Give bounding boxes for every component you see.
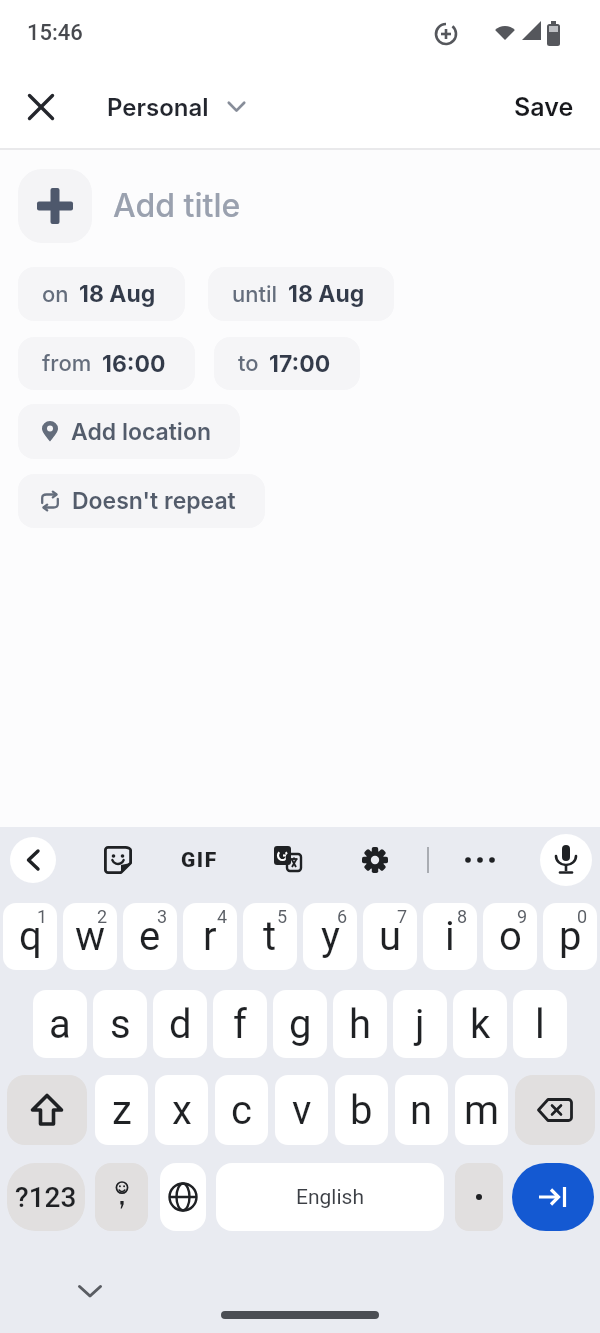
button[interactable]	[455, 1163, 503, 1231]
button[interactable]: Doesn't repeat	[18, 474, 265, 528]
staticText: l	[535, 1001, 545, 1048]
button[interactable]	[465, 857, 495, 863]
staticText: 1	[37, 906, 48, 927]
staticText: a	[49, 1001, 71, 1048]
button[interactable]: g	[273, 990, 327, 1058]
staticText: d	[169, 1001, 192, 1048]
button[interactable]: p	[543, 903, 597, 970]
button[interactable]	[540, 834, 592, 886]
staticText: 16:00	[102, 350, 166, 378]
button[interactable]	[29, 95, 53, 119]
staticText: g	[289, 1001, 312, 1048]
staticText: English	[296, 1185, 364, 1210]
staticText: w	[75, 913, 106, 960]
staticText: 6	[337, 906, 348, 927]
button[interactable]: English	[216, 1163, 444, 1231]
staticText: 18 Aug	[79, 280, 156, 308]
button[interactable]: to	[214, 337, 360, 390]
button[interactable]: m	[455, 1075, 508, 1145]
staticText: v	[292, 1087, 312, 1134]
button[interactable]: i	[423, 903, 477, 970]
staticText: until	[232, 281, 278, 308]
staticText: ?123	[15, 1181, 77, 1214]
staticText: c	[231, 1087, 252, 1134]
staticText: j	[415, 1001, 425, 1048]
staticText: p	[559, 913, 582, 960]
button[interactable]: a	[33, 990, 87, 1058]
staticText: 9	[517, 906, 528, 927]
staticText: on	[42, 281, 69, 308]
button[interactable]: y	[303, 903, 357, 970]
button[interactable]: ?123	[7, 1163, 85, 1231]
button[interactable]: u	[363, 903, 417, 970]
staticText: Doesn't repeat	[72, 487, 236, 515]
staticText: y	[321, 913, 340, 960]
button[interactable]	[104, 846, 132, 874]
staticText: t	[263, 913, 277, 960]
button[interactable]: Add title	[113, 186, 241, 225]
staticText: i	[445, 913, 455, 960]
staticText: GIF	[181, 848, 218, 873]
staticText: f	[233, 1001, 247, 1048]
button[interactable]: c	[215, 1075, 268, 1145]
button[interactable]: h	[333, 990, 387, 1058]
button[interactable]: x	[155, 1075, 208, 1145]
button[interactable]: l	[513, 990, 567, 1058]
staticText: Save	[514, 92, 574, 122]
staticText: 15:46	[27, 20, 83, 46]
staticText: 5	[277, 906, 288, 927]
button[interactable]	[362, 847, 388, 873]
button[interactable]	[274, 846, 302, 874]
button[interactable]: on	[18, 267, 185, 321]
button[interactable]	[515, 1075, 595, 1145]
staticText: 7	[397, 906, 408, 927]
button[interactable]: b	[335, 1075, 388, 1145]
button[interactable]	[10, 837, 56, 883]
staticText: 8	[457, 906, 468, 927]
staticText: r	[203, 913, 217, 960]
staticText: o	[499, 913, 522, 960]
staticText: Personal	[107, 93, 209, 122]
button[interactable]: v	[275, 1075, 328, 1145]
staticText: e	[139, 913, 161, 960]
button[interactable]: s	[93, 990, 147, 1058]
button[interactable]	[18, 169, 92, 243]
button[interactable]: d	[153, 990, 207, 1058]
button[interactable]	[95, 1163, 148, 1231]
button[interactable]: Save	[514, 92, 574, 122]
button[interactable]	[160, 1163, 206, 1231]
staticText: 3	[157, 906, 168, 927]
staticText: h	[349, 1001, 372, 1048]
button[interactable]: o	[483, 903, 537, 970]
staticText: Add location	[71, 418, 211, 446]
staticText: x	[172, 1087, 192, 1134]
button[interactable]: w	[63, 903, 117, 970]
button[interactable]	[512, 1163, 594, 1231]
button[interactable]: k	[453, 990, 507, 1058]
button[interactable]: j	[393, 990, 447, 1058]
staticText: to	[238, 350, 259, 377]
staticText: 17:00	[269, 350, 331, 378]
button[interactable]: z	[95, 1075, 148, 1145]
button[interactable]	[78, 1285, 102, 1298]
staticText: z	[112, 1087, 132, 1134]
button[interactable]: Personal	[107, 90, 245, 124]
button[interactable]: from	[18, 337, 195, 390]
button[interactable]: f	[213, 990, 267, 1058]
button[interactable]: t	[243, 903, 297, 970]
button[interactable]: e	[123, 903, 177, 970]
staticText: 0	[577, 906, 588, 927]
staticText: 4	[217, 906, 228, 927]
staticText: k	[470, 1001, 491, 1048]
button[interactable]: q	[3, 903, 57, 970]
button[interactable]: r	[183, 903, 237, 970]
button[interactable]	[7, 1075, 87, 1145]
button[interactable]: n	[395, 1075, 448, 1145]
staticText: m	[464, 1087, 500, 1134]
button[interactable]: Add location	[18, 404, 240, 459]
staticText: q	[19, 913, 42, 960]
staticText: u	[379, 913, 402, 960]
button[interactable]: until	[208, 267, 394, 321]
staticText: s	[110, 1001, 131, 1048]
button[interactable]: GIF	[181, 848, 218, 873]
